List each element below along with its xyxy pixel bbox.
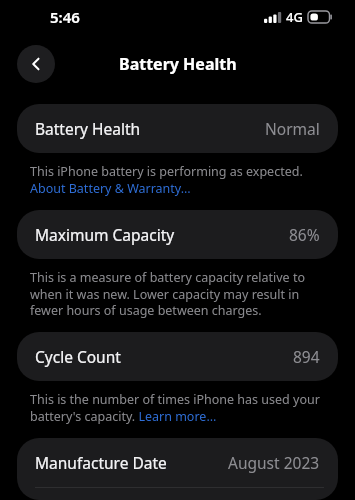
staticText: Cycle Count (35, 346, 121, 367)
button[interactable]: Manufacture Date (17, 438, 338, 487)
staticText: August 2023 (228, 452, 320, 473)
staticText: Maximum Capacity (35, 224, 175, 245)
staticText: 86% (289, 224, 320, 245)
button[interactable]: Cycle Count (17, 332, 338, 381)
staticText: 5:46 (50, 7, 80, 27)
button[interactable]: Back (17, 45, 55, 83)
staticText: This iPhone battery is performing as exp… (30, 163, 325, 196)
button[interactable]: Battery Health (17, 104, 338, 153)
staticText: 4G (286, 8, 303, 26)
staticText: Battery Health (119, 53, 237, 75)
button[interactable]: Maximum Capacity (17, 210, 338, 259)
button[interactable]: This is the number of times iPhone has u… (30, 391, 325, 424)
button[interactable]: This iPhone battery is performing as exp… (30, 163, 325, 196)
staticText: Manufacture Date (35, 452, 167, 473)
staticText: Battery Health (35, 118, 141, 139)
staticText: 894 (293, 346, 320, 367)
staticText: This is the number of times iPhone has u… (30, 391, 325, 424)
staticText: This is a measure of battery capacity re… (30, 269, 325, 318)
button[interactable]: First Use (17, 488, 338, 500)
staticText: Normal (265, 118, 320, 139)
